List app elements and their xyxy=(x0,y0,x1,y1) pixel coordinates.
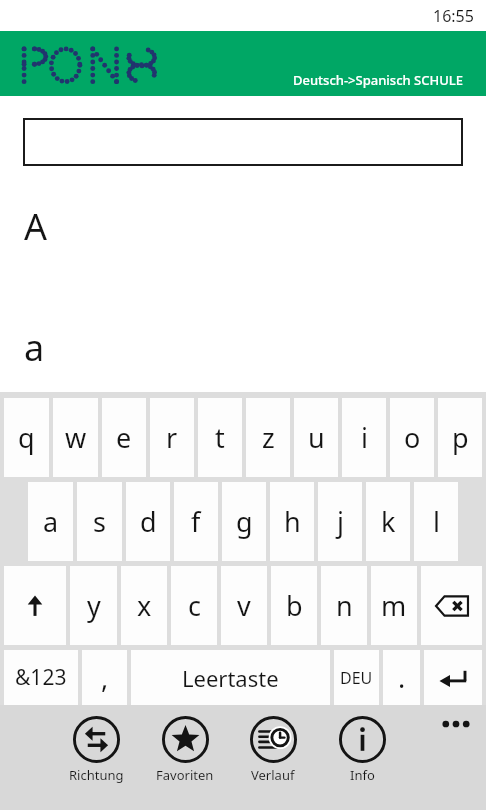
staticText: &123 xyxy=(15,663,67,692)
button[interactable]: p xyxy=(438,398,482,477)
staticText: Leertaste xyxy=(182,663,279,693)
button[interactable]: q xyxy=(4,398,49,477)
button[interactable]: w xyxy=(53,398,98,477)
button[interactable]: DEU xyxy=(334,650,379,705)
button[interactable]: a xyxy=(28,482,73,561)
staticText: y xyxy=(87,587,101,624)
staticText: k xyxy=(381,503,396,540)
staticText: w xyxy=(65,419,87,456)
button[interactable]: k xyxy=(366,482,410,561)
staticText: t xyxy=(215,419,225,456)
button[interactable]: Leertaste xyxy=(131,650,330,705)
button[interactable]: Backspace xyxy=(421,566,482,645)
staticText: z xyxy=(262,419,275,456)
staticText: Favoriten xyxy=(156,766,214,784)
staticText: p xyxy=(452,419,469,456)
button[interactable]: r xyxy=(150,398,194,477)
staticText: f xyxy=(191,503,201,540)
button[interactable]: v xyxy=(221,566,267,645)
button[interactable]: Enter xyxy=(424,650,482,705)
button[interactable]: Shift xyxy=(4,566,66,645)
button[interactable]: d xyxy=(126,482,170,561)
staticText: x xyxy=(137,587,152,624)
button[interactable]: l xyxy=(414,482,458,561)
staticText: A xyxy=(24,202,48,251)
staticText: a xyxy=(43,503,59,540)
button[interactable]: Favoriten xyxy=(149,716,221,784)
staticText: d xyxy=(140,503,157,540)
button[interactable] xyxy=(23,118,463,166)
button[interactable]: z xyxy=(246,398,290,477)
button[interactable]: Richtung xyxy=(60,716,132,784)
button[interactable]: i xyxy=(342,398,386,477)
button[interactable]: &123 xyxy=(4,650,78,705)
staticText: u xyxy=(308,419,325,456)
staticText: DEU xyxy=(340,667,373,689)
staticText: Info xyxy=(350,766,375,784)
staticText: Verlauf xyxy=(251,766,295,784)
button[interactable]: e xyxy=(102,398,146,477)
button[interactable]: u xyxy=(294,398,338,477)
staticText: j xyxy=(337,503,344,540)
button[interactable]: Verlauf xyxy=(237,716,309,784)
staticText: r xyxy=(166,419,178,456)
staticText: , xyxy=(101,659,109,696)
staticText: s xyxy=(93,503,106,540)
button[interactable]: y xyxy=(70,566,117,645)
staticText: i xyxy=(361,419,368,456)
button[interactable]: . xyxy=(383,650,420,705)
button[interactable]: b xyxy=(271,566,317,645)
staticText: m xyxy=(381,587,407,624)
staticText: Deutsch->Spanisch SCHULE xyxy=(293,71,464,89)
button[interactable]: x xyxy=(121,566,167,645)
staticText: g xyxy=(236,503,253,540)
staticText: . xyxy=(398,659,406,696)
button[interactable]: m xyxy=(371,566,417,645)
button[interactable]: h xyxy=(270,482,314,561)
staticText: c xyxy=(188,587,201,624)
button[interactable]: j xyxy=(318,482,362,561)
button[interactable]: n xyxy=(321,566,367,645)
button[interactable]: s xyxy=(77,482,122,561)
staticText: Richtung xyxy=(69,766,124,784)
button[interactable]: o xyxy=(390,398,434,477)
button[interactable]: f xyxy=(174,482,218,561)
button[interactable]: Info xyxy=(326,716,398,784)
button[interactable]: c xyxy=(171,566,217,645)
staticText: b xyxy=(286,587,303,624)
button[interactable]: , xyxy=(82,650,127,705)
button[interactable]: g xyxy=(222,482,266,561)
staticText: o xyxy=(404,419,421,456)
button[interactable]: More options xyxy=(434,711,478,737)
staticText: 16:55 xyxy=(433,5,474,27)
button[interactable]: t xyxy=(198,398,242,477)
staticText: l xyxy=(433,503,440,540)
staticText: q xyxy=(18,419,35,456)
staticText: n xyxy=(336,587,353,624)
staticText: a xyxy=(24,323,45,372)
staticText: v xyxy=(237,587,251,624)
staticText: h xyxy=(284,503,301,540)
staticText: e xyxy=(116,419,132,456)
